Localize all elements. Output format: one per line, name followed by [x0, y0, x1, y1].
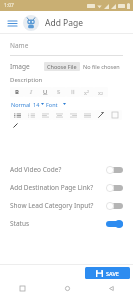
button[interactable]: Align center: [52, 110, 66, 120]
staticText: 14: [33, 101, 40, 108]
staticText: Name: [10, 41, 29, 50]
button[interactable]: Choose File: [44, 62, 80, 71]
button[interactable]: SAVE: [85, 267, 130, 279]
button[interactable]: 14: [32, 99, 45, 109]
staticText: S: [57, 88, 61, 96]
button[interactable]: Open navigation menu: [5, 16, 19, 30]
staticText: Description: [10, 76, 43, 84]
staticText: B: [15, 88, 19, 96]
button[interactable]: Clear formatting: [108, 110, 122, 120]
staticText: Font: [46, 101, 58, 108]
staticText: Choose File: [47, 63, 77, 70]
button[interactable]: Italic: [24, 87, 38, 97]
staticText: 2: [101, 91, 104, 96]
button[interactable]: Show Lead Category Input?: [0, 196, 133, 214]
staticText: Normal: [11, 101, 31, 108]
staticText: Image: [10, 62, 30, 71]
button[interactable]: Indent: [94, 110, 108, 120]
button[interactable]: Ordered list: [10, 110, 24, 120]
button[interactable]: Subscript: [94, 87, 108, 97]
staticText: x: [84, 89, 87, 96]
staticText: I: [30, 88, 32, 96]
button[interactable]: Font: [45, 99, 67, 109]
button[interactable]: Add Destination Page Link?: [0, 178, 133, 196]
staticText: 2: [87, 89, 90, 94]
staticText: U: [43, 88, 48, 96]
button[interactable]: Back: [89, 281, 133, 296]
button[interactable]: Strikethrough: [52, 87, 66, 97]
button[interactable]: Normal: [10, 99, 32, 109]
button[interactable]: Status: [0, 214, 133, 232]
staticText: x: [98, 89, 101, 96]
button[interactable]: Blockquote: [66, 87, 80, 97]
staticText: No file chosen: [83, 63, 120, 70]
button[interactable]: Bullet list: [24, 110, 38, 120]
staticText: SAVE: [106, 270, 119, 277]
staticText: 1:07: [4, 2, 14, 9]
staticText: Status: [10, 219, 30, 228]
button[interactable]: Bold: [10, 87, 24, 97]
staticText: Add Destination Page Link?: [10, 183, 94, 192]
button[interactable]: Recent apps: [0, 281, 45, 296]
button[interactable]: Justify: [80, 110, 94, 120]
button[interactable]: Underline: [38, 87, 52, 97]
button[interactable]: Home: [45, 281, 89, 296]
staticText: Add Page: [45, 17, 84, 29]
button[interactable]: Superscript: [80, 87, 94, 97]
staticText: Add Video Code?: [10, 165, 62, 174]
button[interactable]: Align left: [38, 110, 52, 120]
button[interactable]: Add Video Code?: [0, 160, 133, 178]
staticText: Show Lead Category Input?: [10, 201, 94, 210]
button[interactable]: Align right: [66, 110, 80, 120]
